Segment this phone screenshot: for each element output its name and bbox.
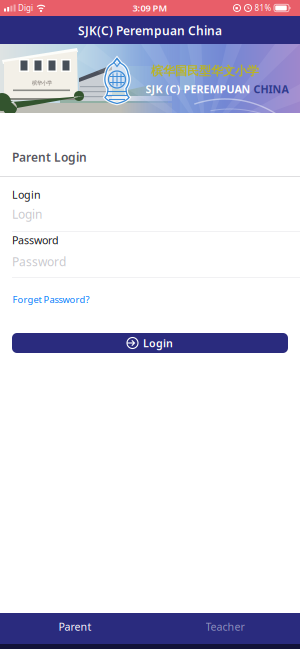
staticText: SJK(C) Perempuan China: [78, 22, 222, 38]
staticText: 槟华国民型华文小学: [151, 64, 259, 78]
staticText: Password: [12, 233, 59, 247]
staticText: Forget Password?: [12, 293, 89, 306]
button[interactable]: Forget Password?: [12, 293, 89, 306]
staticText: 槟华小学: [32, 80, 52, 86]
button[interactable]: Teacher: [150, 613, 300, 644]
staticText: Parent Login: [12, 149, 87, 165]
staticText: Login: [143, 336, 173, 350]
staticText: Digi: [18, 3, 33, 13]
button[interactable]: Login: [0, 206, 300, 222]
staticText: SJK (C) PEREMPUAN: [145, 82, 253, 96]
staticText: Parent: [58, 619, 91, 634]
button[interactable]: Password: [0, 253, 300, 269]
staticText: Login: [12, 187, 41, 202]
staticText: Login: [12, 206, 42, 222]
button[interactable]: Login: [12, 333, 288, 353]
staticText: CHINA: [253, 82, 288, 96]
staticText: 3:09 PM: [132, 2, 167, 14]
staticText: Teacher: [205, 619, 244, 634]
staticText: 81%: [254, 3, 271, 13]
button[interactable]: Parent: [0, 613, 150, 644]
staticText: Password: [12, 253, 66, 269]
